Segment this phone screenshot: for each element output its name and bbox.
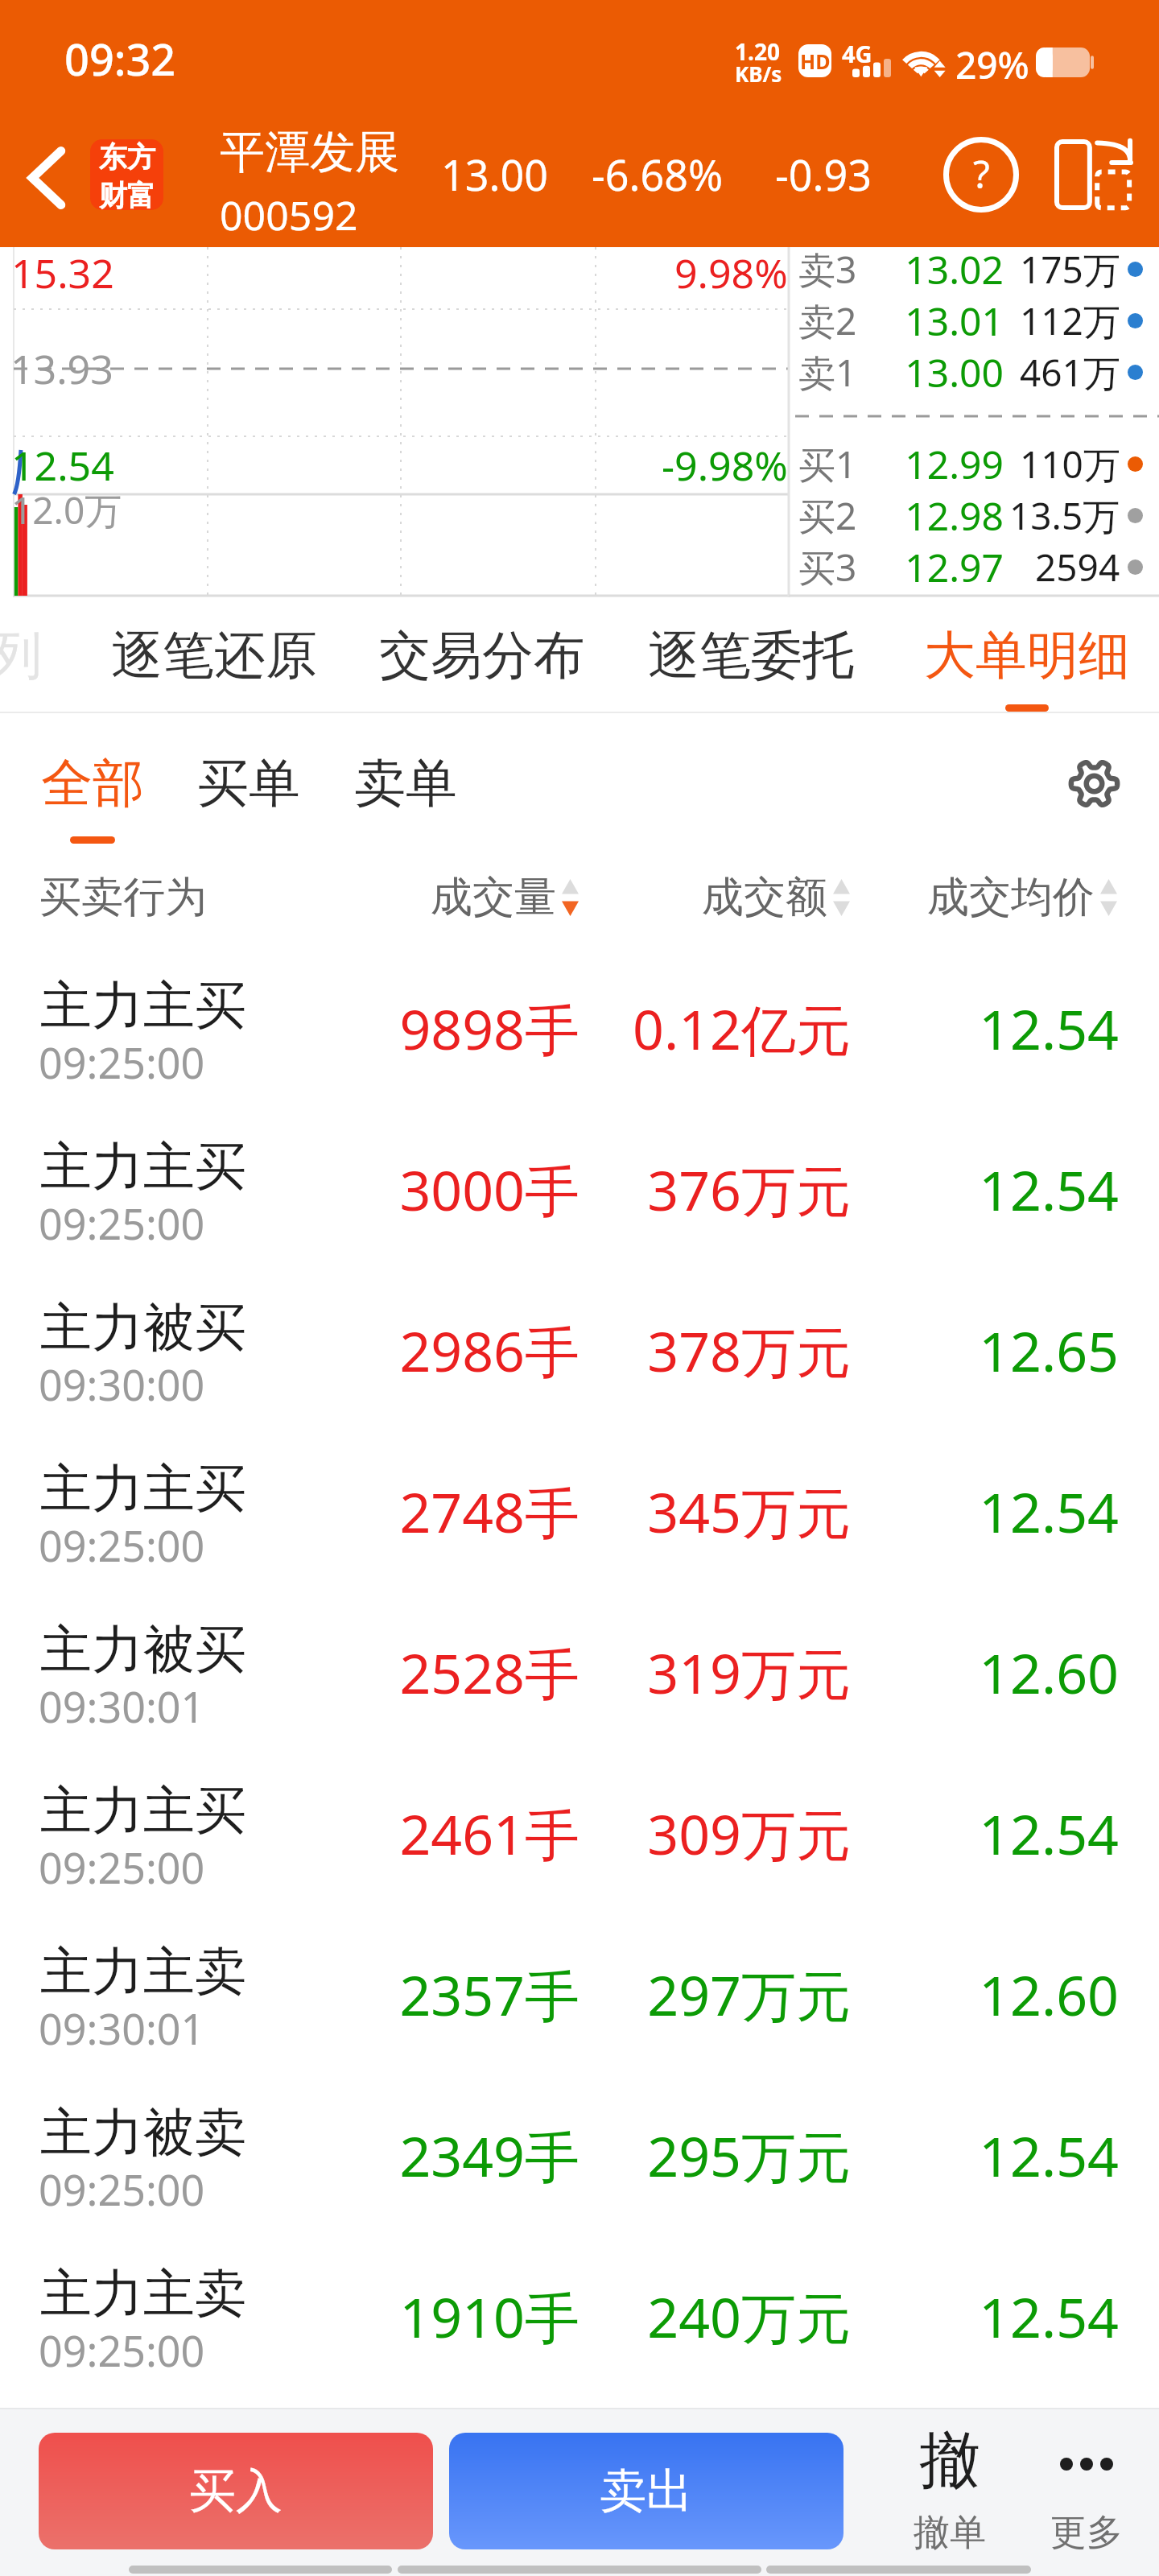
button[interactable]: 成交额 [702,849,850,946]
button[interactable]: More [1022,2419,1151,2564]
staticText: ? [973,147,990,200]
button[interactable]: 主力主买 [0,1755,1159,1916]
staticText: 297万元 [609,1957,851,2032]
staticText: 4G [842,38,872,69]
button[interactable]: Back [6,113,87,243]
button[interactable]: 逐笔还原 [93,597,335,713]
staticText: 378万元 [609,1313,851,1388]
staticText: 成交均价 [927,871,1095,924]
staticText: 成交量 [431,871,556,924]
staticText: 12.97 [857,541,1004,592]
button[interactable]: 逐笔委托 [630,597,872,713]
staticText: 12.99 [857,438,1004,489]
staticText: 12.54 [877,1474,1119,1549]
staticText: 09:30:00 [39,1356,205,1413]
staticText: 12.98 [857,489,1004,541]
button[interactable]: 主力主买 [0,1433,1159,1594]
button[interactable]: 主力被买 [0,1272,1159,1433]
button[interactable]: 卖1 [798,346,1143,398]
button[interactable]: 主力被卖 [0,2077,1159,2238]
button[interactable]: 主力被买 [0,1594,1159,1755]
staticText: -6.68% [592,146,724,203]
button[interactable]: 主力主买 [0,1111,1159,1272]
staticText: 逐笔委托 [648,623,854,688]
staticText: -9.98% [662,438,788,493]
staticText: 13.93 [10,341,113,396]
button[interactable]: 卖出 [449,2433,843,2549]
staticText: 000592 [220,188,358,242]
staticText: 295万元 [609,2118,851,2193]
button[interactable]: Help [933,126,1029,223]
button[interactable]: 列 [0,597,60,713]
staticText: 撤 [919,2422,980,2500]
staticText: 13.01 [857,295,1004,346]
staticText: 2528手 [338,1635,579,1710]
staticText: 09:25:00 [39,1195,205,1252]
staticText: 2748手 [338,1474,579,1549]
button[interactable]: Settings [1050,739,1138,828]
staticText: 主力被买 [40,1617,246,1682]
staticText: 主力被卖 [40,2100,246,2165]
button[interactable]: 全部 [22,713,163,853]
button[interactable]: 卖单 [335,713,476,853]
staticText: 461万 [1020,347,1120,398]
button[interactable]: 买3 [798,541,1143,592]
button[interactable]: 撤 [885,2419,1014,2564]
button[interactable]: 主力主卖 [0,1916,1159,2077]
staticText: 主力主买 [40,1456,246,1521]
staticText: 买单 [197,751,300,816]
staticText: 12.60 [877,1635,1119,1710]
staticText: 0.12亿元 [609,991,851,1066]
staticText: 卖2 [798,295,857,346]
staticText: 2594 [1035,542,1120,592]
staticText: 卖单 [354,751,457,816]
staticText: 12.54 [877,991,1119,1066]
staticText: 全部 [41,751,144,816]
button[interactable]: 大单明细 [906,597,1148,713]
staticText: 2357手 [338,1957,579,2032]
button[interactable]: 买入 [39,2433,433,2549]
staticText: HD [800,47,831,75]
staticText: 2461手 [338,1796,579,1871]
staticText: 309万元 [609,1796,851,1871]
staticText: 主力被买 [40,1295,246,1360]
staticText: 12.54 [877,1152,1119,1227]
button[interactable]: 买单 [178,713,320,853]
staticText: 卖1 [798,347,857,398]
staticText: -0.93 [775,146,872,203]
button[interactable]: 主力主卖 [0,2238,1159,2399]
button[interactable]: 买1 [798,438,1143,489]
staticText: 卖3 [798,244,857,295]
staticText: 110万 [1020,439,1120,489]
staticText: 13.00 [857,346,1004,398]
button[interactable]: 卖3 [798,243,1143,295]
button[interactable]: 买2 [798,489,1143,541]
staticText: 12.54 [877,1796,1119,1871]
staticText: 09:25:00 [39,1034,205,1091]
staticText: 买入 [189,2462,283,2520]
staticText: 主力主买 [40,1778,246,1843]
staticText: 列 [0,623,42,688]
staticText: 15.32 [11,246,114,300]
staticText: 1910手 [338,2279,579,2354]
staticText: 9898手 [338,991,579,1066]
button[interactable]: 成交均价 [927,849,1117,946]
button[interactable]: Rotate to landscape [1043,130,1141,219]
staticText: 卖出 [600,2462,693,2520]
staticText: 更多 [1050,2510,1123,2556]
staticText: 09:30:01 [39,2000,205,2057]
button[interactable]: 成交量 [431,849,579,946]
button[interactable]: 主力主买 [0,950,1159,1111]
staticText: 3000手 [338,1152,579,1227]
staticText: 买1 [798,439,857,489]
staticText: 主力主卖 [40,1939,246,2004]
staticText: 2986手 [338,1313,579,1388]
staticText: 撤单 [914,2510,986,2556]
button[interactable]: 卖2 [798,295,1143,346]
staticText: 12.60 [877,1957,1119,2032]
staticText: 12.0万 [11,485,122,535]
staticText: 345万元 [609,1474,851,1549]
staticText: 09:25:00 [39,1517,205,1574]
staticText: 09:25:00 [39,2161,205,2218]
button[interactable]: 交易分布 [361,597,603,713]
